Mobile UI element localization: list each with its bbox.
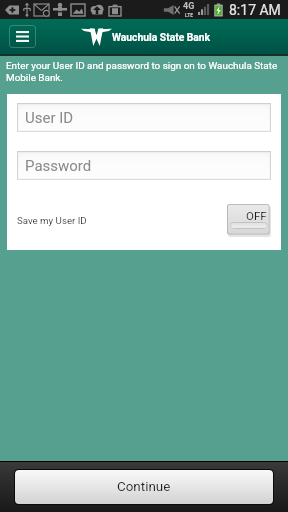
staticText: Password <box>25 157 92 175</box>
button[interactable]: Menu <box>9 25 36 48</box>
staticText: OFF <box>246 209 267 222</box>
staticText: 8:17 AM <box>229 2 281 18</box>
staticText: LTE <box>185 12 194 18</box>
button[interactable]: Continue <box>15 470 273 504</box>
staticText: Enter your User ID and password to sign … <box>6 60 282 84</box>
staticText: Save my User ID <box>17 215 87 226</box>
staticText: Continue <box>117 479 171 495</box>
staticText: User ID <box>25 109 74 127</box>
staticText: 4G <box>183 1 195 12</box>
button[interactable]: Password <box>17 151 271 180</box>
button[interactable]: User ID <box>17 103 271 132</box>
staticText: Wauchula State Bank <box>112 31 211 43</box>
button[interactable]: Save my User ID switch, off <box>227 204 271 237</box>
